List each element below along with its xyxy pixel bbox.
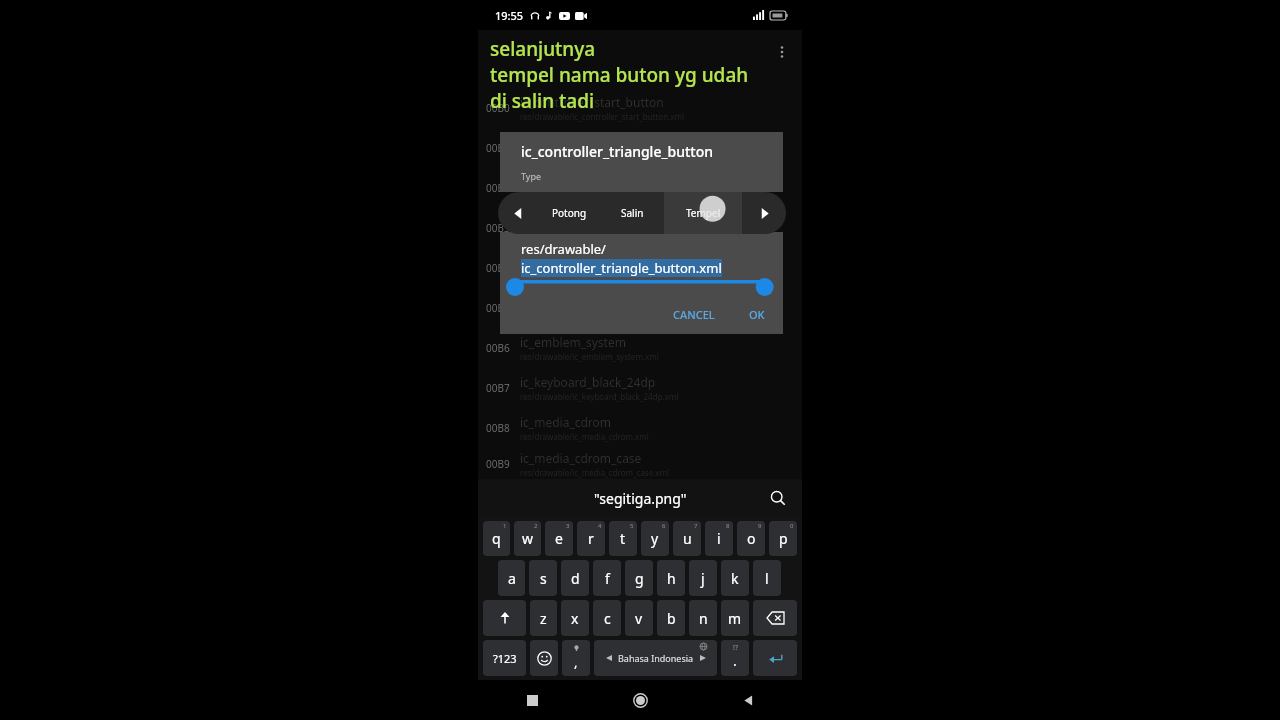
button[interactable]: 00B1 (478, 128, 802, 168)
button[interactable]: v (625, 600, 653, 636)
button[interactable]: o (737, 521, 765, 556)
button[interactable]: 00B4 (478, 248, 802, 288)
button[interactable]: Comma (562, 640, 590, 676)
button[interactable]: 00B9 (478, 448, 802, 479)
button[interactable]: i (705, 521, 733, 556)
button[interactable]: b (657, 600, 685, 636)
staticText: ic_controller_triangle_button (520, 174, 682, 190)
button[interactable]: 00B0 (478, 88, 802, 128)
staticText: 00B7 (486, 381, 510, 395)
staticText: a (508, 569, 516, 588)
button[interactable]: d (561, 560, 589, 596)
staticText: 3 (566, 522, 570, 530)
button[interactable]: z (530, 600, 557, 636)
staticText: 00B8 (486, 421, 510, 435)
staticText: res/drawable/ic_media_cdrom_case.xml (520, 467, 670, 478)
button[interactable]: Symbols (483, 640, 526, 676)
button[interactable]: m (721, 600, 749, 636)
staticText: ic_keyboard_black_24dp (520, 374, 656, 390)
staticText: , (574, 653, 578, 671)
button[interactable]: 00B3 (478, 208, 802, 248)
staticText: !? (733, 643, 738, 653)
button[interactable] (483, 600, 526, 636)
button[interactable]: Period (721, 640, 749, 676)
staticText: res/drawable/ic_emblem_general.xml (520, 271, 661, 282)
button[interactable]: "segitiga.png" (478, 479, 802, 517)
button[interactable]: r (577, 521, 605, 556)
staticText: n (699, 609, 708, 628)
staticText: w (522, 529, 534, 548)
button[interactable]: c (593, 600, 621, 636)
button[interactable]: k (721, 560, 749, 596)
button[interactable]: 00B6 (478, 328, 802, 368)
staticText: Salin (621, 206, 644, 220)
staticText: e (555, 529, 563, 548)
button[interactable]: u (673, 521, 701, 556)
staticText: x (571, 609, 579, 628)
staticText: g (635, 569, 644, 588)
staticText: u (683, 529, 692, 548)
staticText: l (765, 569, 769, 588)
staticText: p (779, 529, 788, 548)
button[interactable]: 00B5 (478, 288, 802, 328)
button[interactable]: Tempel (664, 192, 742, 234)
button[interactable]: 00B2 (478, 168, 802, 208)
button[interactable]: Bahasa Indonesia (594, 640, 717, 676)
button[interactable]: More options (770, 40, 794, 64)
staticText: res/drawable/ic_keyboard_black_24dp.xml (520, 391, 679, 402)
staticText: ic_media_cdrom (520, 414, 612, 430)
staticText: Bahasa Indonesia (618, 652, 694, 664)
button[interactable]: g (625, 560, 653, 596)
button[interactable]: Salin (601, 192, 664, 234)
button[interactable]: Enter (753, 640, 797, 676)
staticText: ic_emblem_system (520, 334, 626, 350)
staticText: o (747, 529, 756, 548)
button[interactable]: h (657, 560, 685, 596)
button[interactable]: Home (586, 680, 694, 720)
button[interactable]: p (769, 521, 797, 556)
button[interactable]: s (529, 560, 557, 596)
button[interactable]: t (609, 521, 637, 556)
button[interactable]: j (689, 560, 717, 596)
button[interactable]: w (514, 521, 541, 556)
button[interactable]: q (483, 521, 510, 556)
staticText: 8 (726, 522, 730, 530)
button[interactable]: e (545, 521, 573, 556)
staticText: ic_dialog_info (520, 214, 597, 230)
button[interactable]: Previous (498, 192, 538, 234)
button[interactable]: a (498, 560, 525, 596)
staticText: s (540, 569, 547, 588)
staticText: CANCEL (673, 307, 715, 322)
button[interactable]: 00B7 (478, 368, 802, 408)
staticText: res/drawable/ (521, 240, 606, 258)
staticText: res/drawable/ic_emblem_system.xml (520, 351, 659, 362)
button[interactable]: Backspace (753, 600, 797, 636)
button[interactable]: CANCEL (667, 303, 721, 326)
staticText: b (667, 609, 676, 628)
button[interactable]: x (561, 600, 589, 636)
button[interactable]: Potong (538, 192, 601, 234)
button[interactable]: Next (742, 192, 786, 234)
staticText: t (620, 529, 626, 548)
staticText: v (635, 609, 643, 628)
button[interactable]: f (593, 560, 621, 596)
button[interactable]: 00B8 (478, 408, 802, 448)
button[interactable]: y (641, 521, 669, 556)
staticText: 19:55 (495, 8, 524, 23)
button[interactable]: n (689, 600, 717, 636)
staticText: tempel nama buton yg udah (490, 62, 749, 88)
staticText: 00B0 (486, 101, 510, 115)
staticText: 5 (630, 522, 634, 530)
staticText: selanjutnya (490, 36, 596, 62)
button[interactable]: Back (694, 680, 802, 720)
button[interactable]: Search (766, 486, 790, 510)
staticText: res/drawable/ic_media_cdrom.xml (520, 431, 649, 442)
staticText: m (728, 609, 742, 628)
button[interactable]: Recents (478, 680, 586, 720)
button[interactable]: OK (743, 303, 771, 326)
staticText: Potong (552, 206, 587, 220)
button[interactable]: l (753, 560, 781, 596)
staticText: ic_controller_toggle_slowmo (520, 134, 680, 150)
staticText: 00B2 (486, 181, 510, 195)
button[interactable]: Emoji (530, 640, 558, 676)
